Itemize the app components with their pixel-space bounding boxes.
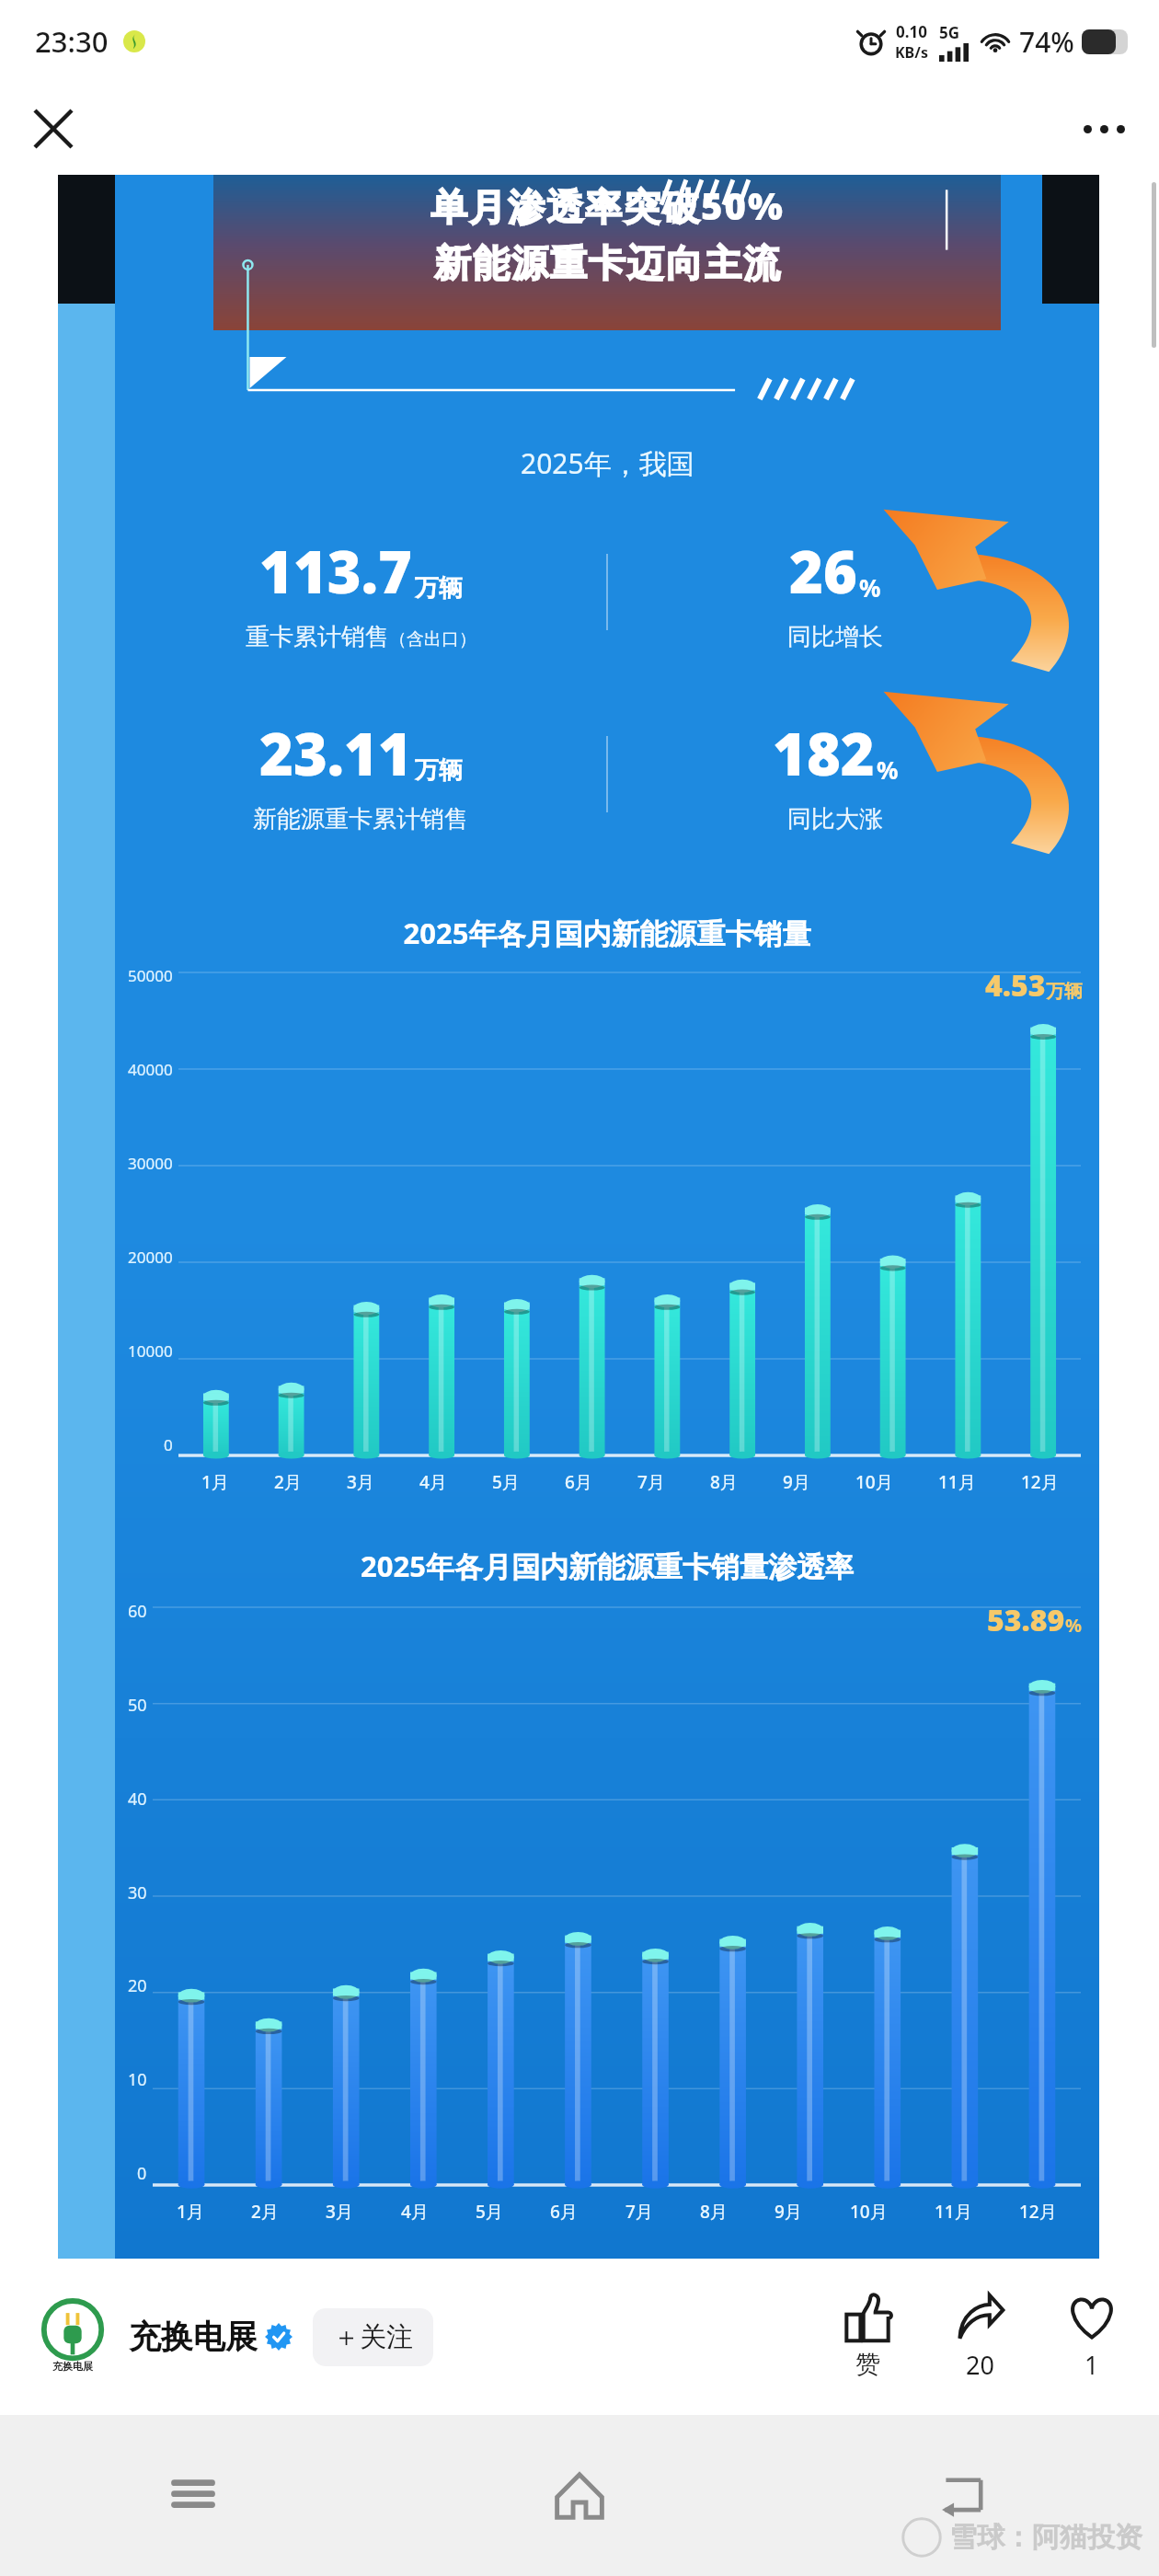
staticText: 7月 [637, 1470, 665, 1494]
staticText: 充换电展 [52, 2360, 93, 2373]
staticText: 23:30 [35, 22, 109, 61]
staticText: 12月 [1019, 2200, 1057, 2224]
staticText: 单月渗透率突破50% [430, 180, 785, 231]
staticText: 2025年各月国内新能源重卡销量 [115, 914, 1099, 952]
staticText: KB/s [895, 42, 928, 63]
staticText: 182 [773, 714, 875, 793]
staticText: 万辆 [1046, 980, 1083, 1003]
staticText: 3月 [326, 2200, 353, 2224]
staticText: 新能源重卡累计销售 [253, 804, 468, 834]
staticText: 3月 [347, 1470, 374, 1494]
staticText: 9月 [775, 2200, 802, 2224]
staticText: 9月 [783, 1470, 810, 1494]
staticText: 74% [1019, 23, 1074, 61]
staticText: 1月 [201, 1470, 229, 1494]
staticText: % [877, 753, 899, 786]
staticText: 6月 [550, 2200, 578, 2224]
staticText: 5月 [476, 2200, 503, 2224]
staticText: 10000 [128, 1340, 173, 1362]
staticText: 新能源重卡迈向主流 [433, 240, 781, 286]
staticText: 30 [128, 1881, 147, 1904]
staticText: 40 [128, 1788, 147, 1811]
staticText: 50000 [128, 965, 173, 986]
staticText: （含出口） [389, 628, 476, 650]
staticText: 1月 [177, 2200, 204, 2224]
other: Like [843, 2294, 892, 2343]
other: Share [955, 2293, 1004, 2342]
staticText: 7月 [625, 2200, 653, 2224]
staticText: 1 [1084, 2348, 1099, 2382]
button[interactable]: Close [17, 92, 90, 166]
staticText: 20 [966, 2348, 994, 2382]
staticText: 40000 [128, 1059, 173, 1080]
staticText: 同比增长 [787, 622, 883, 652]
staticText: 11月 [935, 2200, 972, 2224]
staticText: 20 [128, 1974, 147, 1997]
staticText: 60 [128, 1600, 147, 1623]
staticText: 2025年，我国 [521, 444, 694, 482]
staticText: 4.53 [985, 965, 1046, 1006]
staticText: 113.7 [259, 532, 412, 611]
staticText: 充换电展 [129, 2317, 258, 2357]
staticText: 4月 [419, 1470, 447, 1494]
button[interactable]: Share [949, 2289, 1010, 2386]
staticText: 万辆 [415, 755, 463, 786]
button[interactable]: ＋关注 [313, 2308, 433, 2366]
button[interactable]: 充换电展 [129, 2317, 293, 2357]
staticText: 2月 [274, 1470, 302, 1494]
other: Favorite [1067, 2293, 1117, 2342]
staticText: 23.11 [259, 714, 412, 793]
staticText: 赞 [855, 2349, 880, 2380]
staticText: 2月 [251, 2200, 279, 2224]
staticText: 0 [137, 2162, 147, 2185]
button[interactable]: More options [1067, 92, 1141, 166]
staticText: 12月 [1021, 1470, 1059, 1494]
button[interactable]: Like [837, 2290, 898, 2384]
staticText: % [1065, 1613, 1083, 1638]
staticText: 5G [939, 22, 960, 43]
staticText: 53.89 [987, 1600, 1065, 1640]
staticText: 0 [164, 1434, 173, 1455]
button[interactable]: Back [773, 2415, 1159, 2576]
staticText: 30000 [128, 1153, 173, 1174]
staticText: 4月 [401, 2200, 429, 2224]
staticText: 8月 [700, 2200, 728, 2224]
staticText: 26 [789, 532, 857, 611]
staticText: 10月 [850, 2200, 888, 2224]
staticText: 重卡累计销售 [246, 622, 389, 652]
staticText: 5月 [492, 1470, 520, 1494]
button[interactable]: Home [386, 2415, 773, 2576]
staticText: 6月 [565, 1470, 592, 1494]
staticText: 50 [128, 1694, 147, 1717]
staticText: % [859, 571, 881, 604]
staticText: 雪球：阿猫投资 [949, 2520, 1142, 2555]
staticText: 2025年各月国内新能源重卡销量渗透率 [115, 1547, 1099, 1585]
button[interactable]: Recent apps [0, 2415, 386, 2576]
staticText: 11月 [938, 1470, 976, 1494]
staticText: 万辆 [415, 573, 463, 604]
staticText: ＋关注 [333, 2320, 413, 2354]
staticText: 同比大涨 [787, 804, 883, 834]
staticText: 8月 [710, 1470, 738, 1494]
staticText: 10 [128, 2068, 147, 2091]
staticText: 20000 [128, 1247, 173, 1268]
staticText: 0.10 [896, 21, 927, 42]
staticText: 10月 [855, 1470, 893, 1494]
button[interactable]: Author avatar [37, 2301, 109, 2373]
button[interactable]: Favorite [1061, 2289, 1122, 2386]
